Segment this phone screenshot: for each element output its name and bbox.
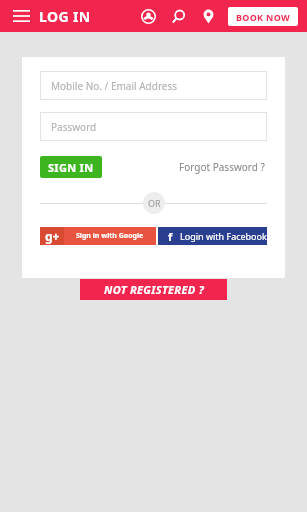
staticText: NOT REGISTERED ? [104,282,204,297]
button[interactable]: Forgot Password ? [179,160,267,174]
button[interactable]: Location [196,4,220,28]
staticText: SIGN IN [48,160,94,175]
button[interactable]: NOT REGISTERED ? [80,279,227,300]
staticText: Login with Facebook [180,230,267,242]
button[interactable]: Password [40,112,267,141]
staticText: f [168,229,173,244]
staticText: LOG IN [39,7,91,26]
button[interactable]: Mobile No. / Email Address [40,71,267,100]
staticText: BOOK NOW [236,11,290,23]
button[interactable]: SIGN IN [40,156,102,178]
button[interactable]: f [158,227,267,245]
staticText: g+ [45,228,60,244]
button[interactable]: Account [136,4,160,28]
button[interactable]: Search [166,4,190,28]
staticText: OR [148,197,161,209]
button[interactable]: Menu [9,4,33,28]
button[interactable]: BOOK NOW [228,7,298,26]
staticText: Mobile No. / Email Address [51,79,178,93]
staticText: Password [51,120,97,134]
button[interactable]: g+ [40,227,156,245]
staticText: Forgot Password ? [179,160,265,174]
staticText: Sign in with Google [76,231,144,241]
